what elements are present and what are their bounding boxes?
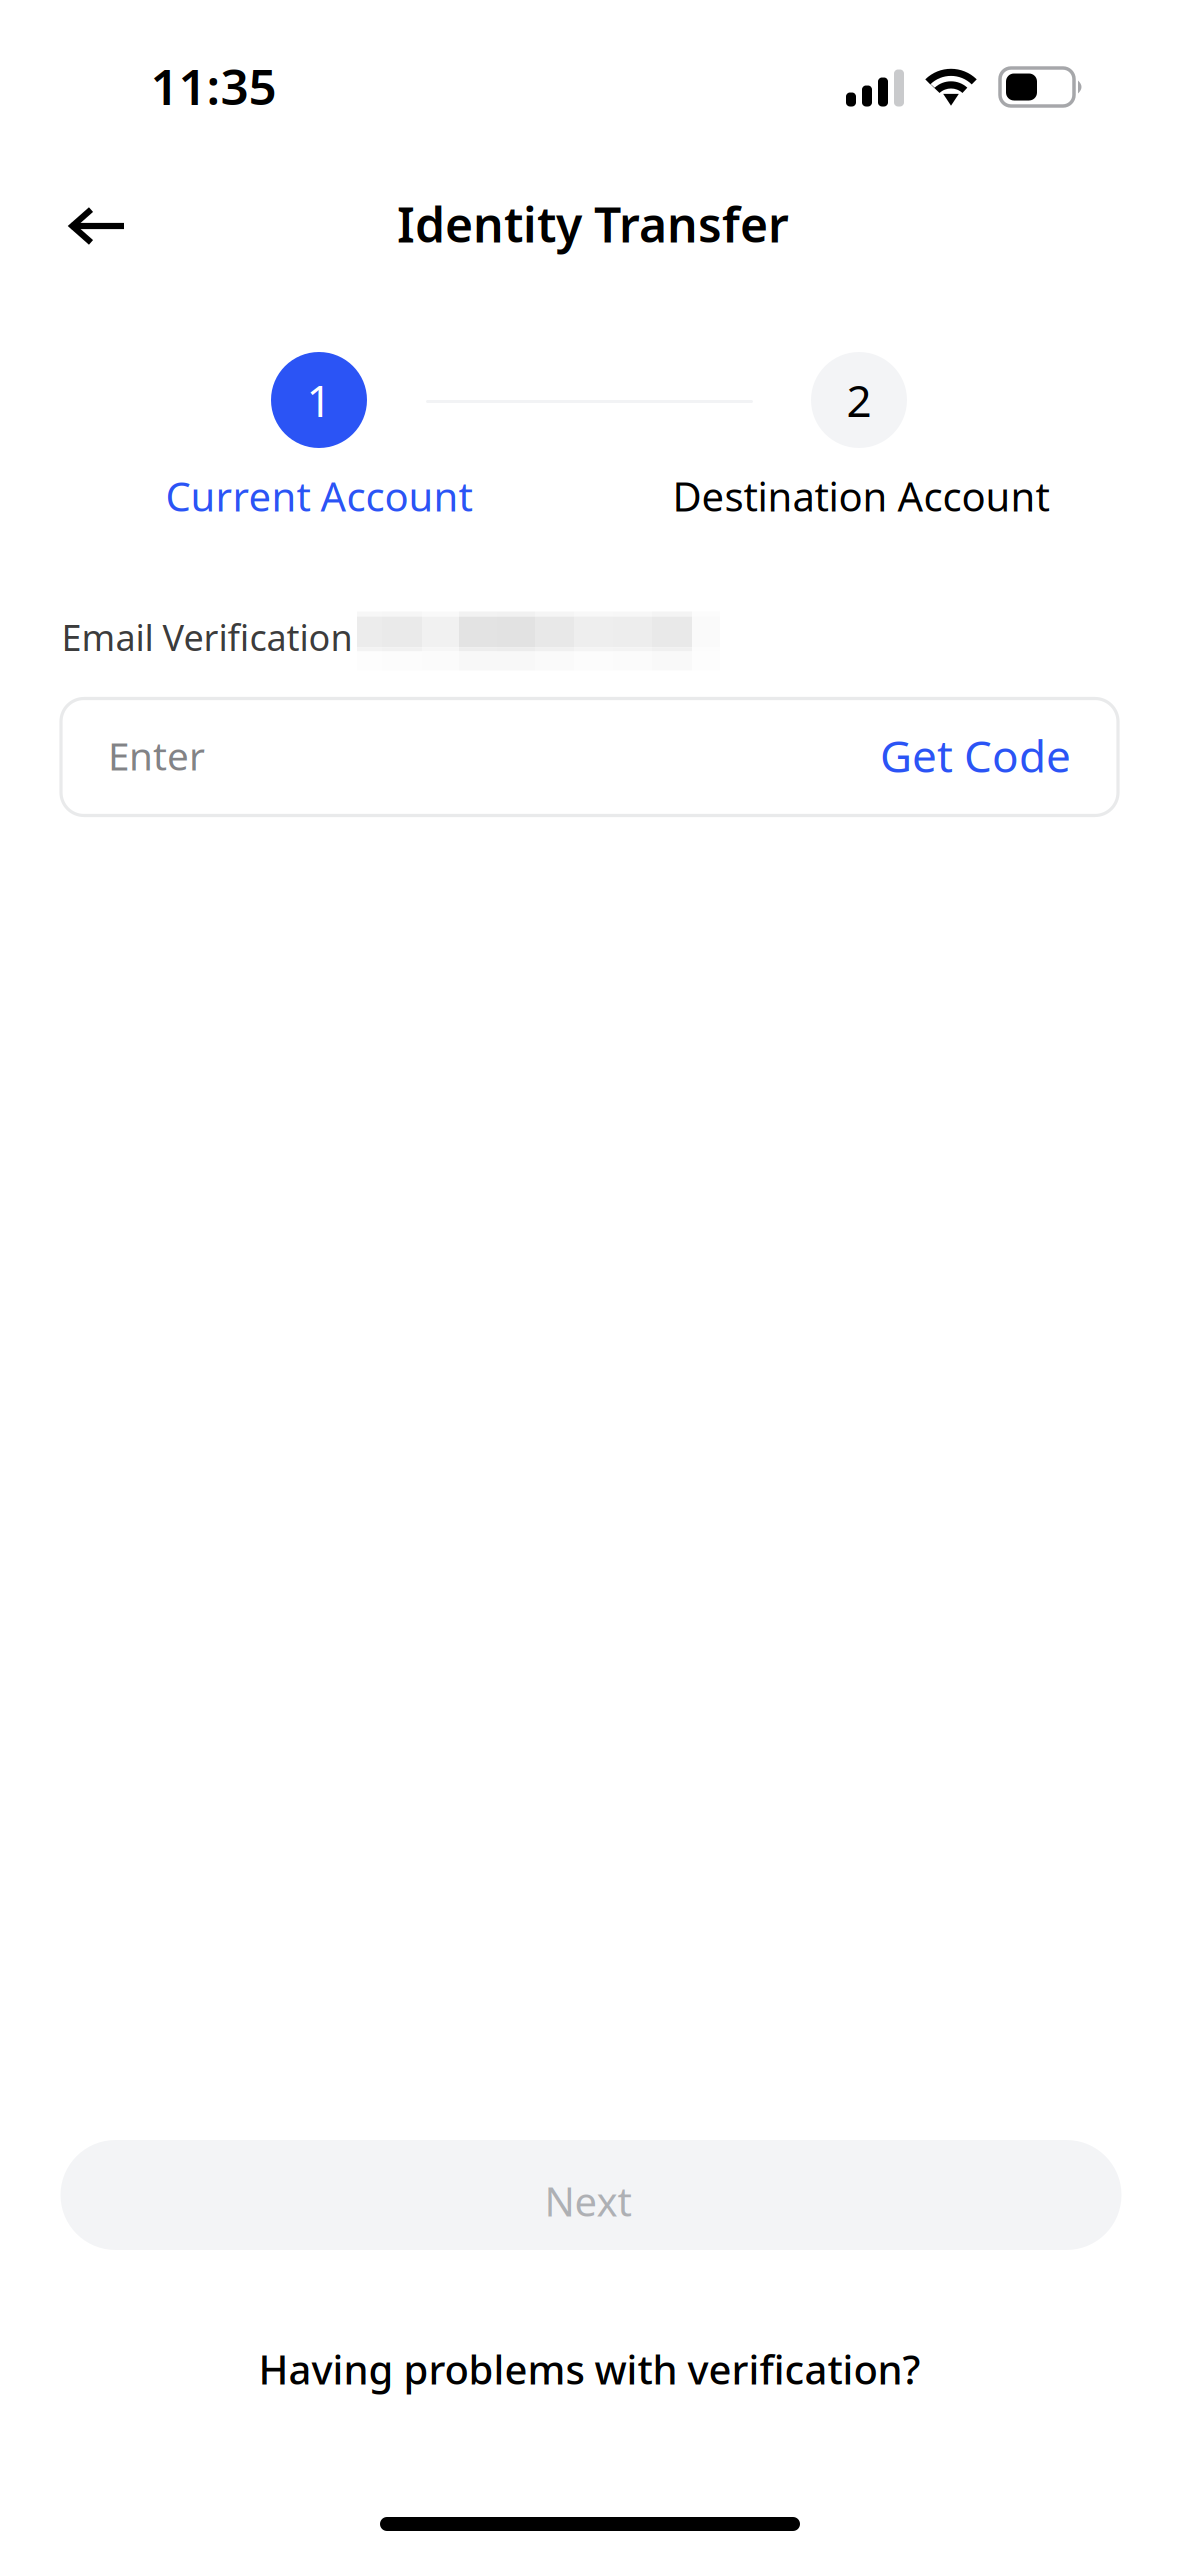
staticText: Next xyxy=(544,2174,631,2227)
button[interactable]: Next xyxy=(60,2140,1121,2250)
staticText: Identity Transfer xyxy=(397,192,789,256)
staticText: Having problems with verification? xyxy=(258,2342,920,2395)
button[interactable]: Back xyxy=(43,172,151,280)
button[interactable]: Get Code xyxy=(880,697,1071,814)
staticText: Enter xyxy=(108,730,205,781)
staticText: 1 xyxy=(306,371,331,429)
staticText: Current Account xyxy=(165,469,472,522)
button[interactable]: Having problems with verification? xyxy=(239,2337,939,2401)
staticText: 2 xyxy=(846,371,871,429)
staticText: Email Verification xyxy=(61,613,352,661)
staticText: 11:35 xyxy=(150,53,276,118)
staticText: Get Code xyxy=(880,726,1071,785)
staticText: Destination Account xyxy=(672,469,1049,522)
